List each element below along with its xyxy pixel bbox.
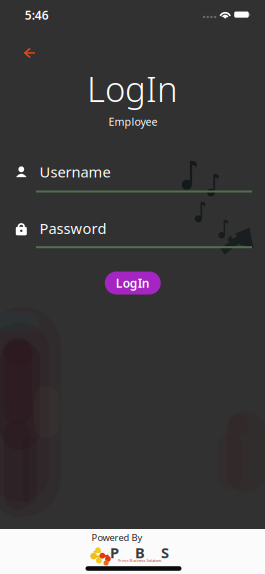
staticText: LogIn	[116, 275, 150, 291]
button[interactable]: LogIn	[105, 271, 161, 294]
button[interactable]: Back	[12, 38, 46, 68]
staticText: LogIn	[87, 65, 178, 111]
staticText: Prime Business Solutions	[117, 558, 161, 563]
staticText: 5:46	[25, 7, 49, 23]
staticText: Password	[39, 219, 106, 238]
staticText: Employee	[108, 114, 157, 129]
staticText: Username	[39, 162, 110, 182]
staticText: P B S	[110, 543, 169, 562]
staticText: Powered By	[91, 531, 142, 544]
